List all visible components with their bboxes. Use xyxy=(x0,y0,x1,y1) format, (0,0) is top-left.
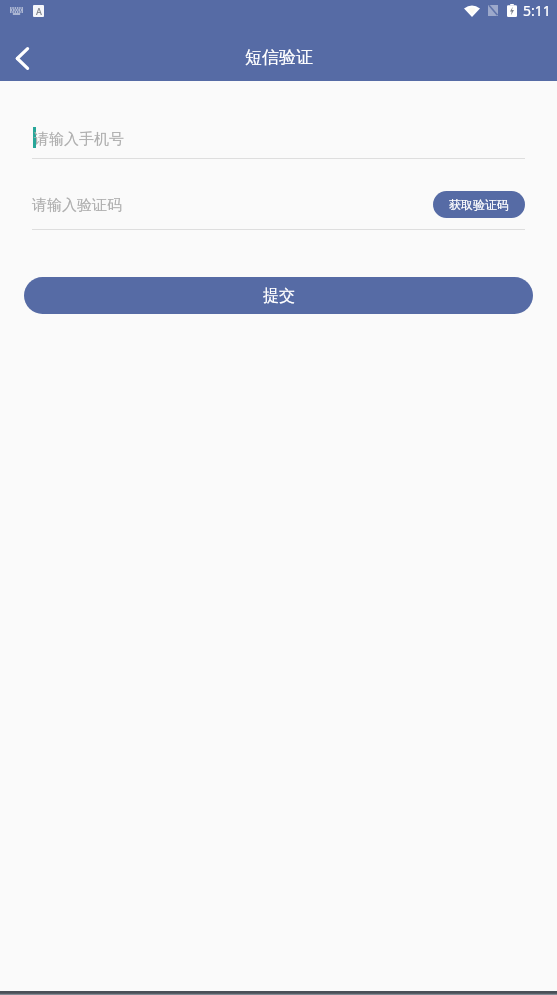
button[interactable]: 请输入手机号 xyxy=(32,126,525,152)
button[interactable]: 请输入验证码 xyxy=(32,191,433,218)
button[interactable]: 提交 xyxy=(24,277,533,314)
button[interactable]: 获取验证码 xyxy=(433,191,525,218)
staticText: 提交 xyxy=(263,286,295,306)
staticText: 5:11 xyxy=(523,1,551,20)
staticText: 请输入手机号 xyxy=(34,130,124,149)
staticText: A xyxy=(36,5,42,17)
button[interactable]: Back xyxy=(0,28,44,81)
staticText: 短信验证 xyxy=(245,47,313,68)
staticText: 请输入验证码 xyxy=(32,196,122,215)
staticText: 获取验证码 xyxy=(449,197,509,212)
